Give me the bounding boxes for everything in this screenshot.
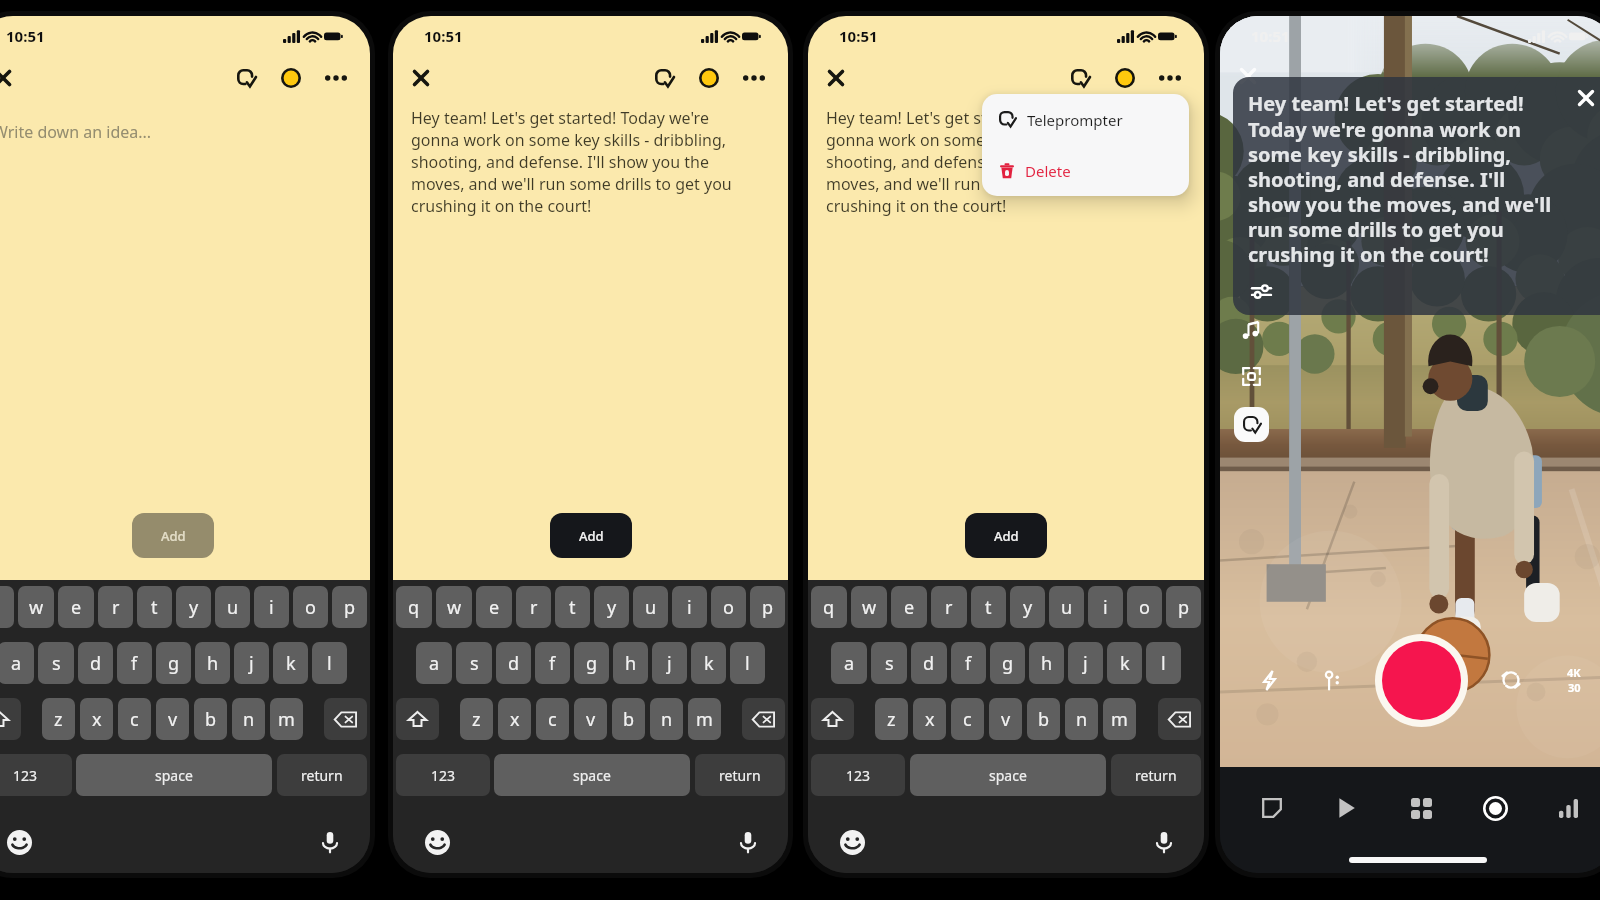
button[interactable]: Teleprompter xyxy=(1234,407,1269,442)
button[interactable]: space xyxy=(494,754,690,796)
button[interactable]: i xyxy=(1088,586,1123,628)
button[interactable]: return xyxy=(277,754,367,796)
button[interactable]: u xyxy=(633,586,668,628)
button[interactable]: a xyxy=(831,642,867,684)
button[interactable]: j xyxy=(234,642,269,684)
button[interactable]: shift xyxy=(811,698,854,740)
button[interactable]: q xyxy=(396,586,432,628)
button[interactable]: v xyxy=(156,698,189,740)
button[interactable]: v xyxy=(574,698,607,740)
button[interactable]: Camera xyxy=(1474,787,1516,829)
button[interactable]: More options xyxy=(318,60,354,96)
button[interactable]: Voice input xyxy=(732,826,764,858)
button[interactable]: Teleprompter xyxy=(982,94,1189,145)
button[interactable]: f xyxy=(117,642,152,684)
button[interactable]: Emoji xyxy=(421,826,453,858)
button[interactable]: w xyxy=(851,586,887,628)
button[interactable]: Resolution 4K 30fps xyxy=(1554,660,1594,700)
button[interactable]: Record color xyxy=(273,60,309,96)
button[interactable]: Teleprompter xyxy=(1062,60,1098,96)
button[interactable]: backspace xyxy=(742,698,785,740)
button[interactable]: h xyxy=(195,642,230,684)
button[interactable]: Record color xyxy=(691,60,727,96)
button[interactable]: 123 xyxy=(0,754,72,796)
button[interactable]: f xyxy=(535,642,570,684)
button[interactable]: Scan xyxy=(1234,359,1268,393)
button[interactable]: x xyxy=(80,698,113,740)
button[interactable]: v xyxy=(989,698,1022,740)
button[interactable]: c xyxy=(118,698,151,740)
button[interactable]: Timer xyxy=(1312,660,1352,700)
button[interactable]: l xyxy=(312,642,347,684)
button[interactable]: space xyxy=(76,754,272,796)
button[interactable]: s xyxy=(456,642,492,684)
button[interactable]: h xyxy=(1029,642,1064,684)
button[interactable]: Close xyxy=(0,61,20,95)
button[interactable]: h xyxy=(613,642,648,684)
button[interactable]: j xyxy=(1068,642,1103,684)
button[interactable]: q xyxy=(0,586,14,628)
button[interactable]: Add xyxy=(965,513,1047,558)
button[interactable]: space xyxy=(910,754,1106,796)
button[interactable]: i xyxy=(672,586,707,628)
button[interactable]: Stats xyxy=(1548,787,1590,829)
button[interactable]: b xyxy=(612,698,645,740)
button[interactable]: d xyxy=(78,642,113,684)
button[interactable]: s xyxy=(38,642,74,684)
button[interactable]: p xyxy=(750,586,785,628)
button[interactable]: Flash xyxy=(1249,660,1289,700)
button[interactable]: p xyxy=(332,586,367,628)
button[interactable]: Notes xyxy=(1251,787,1293,829)
button[interactable]: x xyxy=(498,698,531,740)
button[interactable]: j xyxy=(652,642,687,684)
button[interactable]: Hey team! Let's get started! Today we're… xyxy=(808,107,1204,580)
button[interactable]: Emoji xyxy=(836,826,868,858)
button[interactable]: Close teleprompter xyxy=(1571,83,1600,113)
button[interactable]: Play xyxy=(1325,787,1367,829)
button[interactable]: r xyxy=(516,586,551,628)
button[interactable]: n xyxy=(232,698,265,740)
button[interactable]: l xyxy=(730,642,765,684)
button[interactable]: Teleprompter xyxy=(646,60,682,96)
button[interactable]: r xyxy=(931,586,967,628)
button[interactable]: Emoji xyxy=(3,826,35,858)
button[interactable]: m xyxy=(688,698,721,740)
button[interactable]: b xyxy=(194,698,227,740)
button[interactable]: g xyxy=(990,642,1025,684)
button[interactable]: t xyxy=(971,586,1006,628)
button[interactable]: m xyxy=(1103,698,1136,740)
button[interactable]: z xyxy=(875,698,908,740)
button[interactable]: e xyxy=(476,586,512,628)
button[interactable]: return xyxy=(1111,754,1201,796)
button[interactable]: s xyxy=(871,642,907,684)
button[interactable]: backspace xyxy=(1158,698,1201,740)
button[interactable]: Delete xyxy=(982,145,1189,196)
button[interactable]: n xyxy=(1065,698,1098,740)
button[interactable]: f xyxy=(951,642,986,684)
button[interactable]: n xyxy=(650,698,683,740)
button[interactable]: k xyxy=(273,642,308,684)
button[interactable]: Voice input xyxy=(1148,826,1180,858)
button[interactable]: y xyxy=(594,586,629,628)
button[interactable]: k xyxy=(691,642,726,684)
button[interactable]: o xyxy=(711,586,746,628)
button[interactable]: e xyxy=(58,586,94,628)
button[interactable]: w xyxy=(436,586,472,628)
button[interactable]: u xyxy=(1049,586,1084,628)
button[interactable]: shift xyxy=(0,698,21,740)
button[interactable]: e xyxy=(891,586,927,628)
button[interactable]: c xyxy=(951,698,984,740)
button[interactable]: Switch camera xyxy=(1491,660,1531,700)
button[interactable]: t xyxy=(137,586,172,628)
button[interactable]: Hey team! Let's get started! Today we're… xyxy=(393,107,788,580)
button[interactable]: g xyxy=(574,642,609,684)
button[interactable]: Voice input xyxy=(314,826,346,858)
button[interactable]: Write down an idea... xyxy=(0,107,370,580)
button[interactable]: Record xyxy=(1382,641,1461,720)
button[interactable]: q xyxy=(811,586,847,628)
button[interactable]: Close xyxy=(819,61,853,95)
button[interactable]: y xyxy=(1010,586,1045,628)
button[interactable]: Teleprompter settings xyxy=(1247,277,1275,305)
button[interactable]: o xyxy=(293,586,328,628)
button[interactable]: p xyxy=(1166,586,1201,628)
